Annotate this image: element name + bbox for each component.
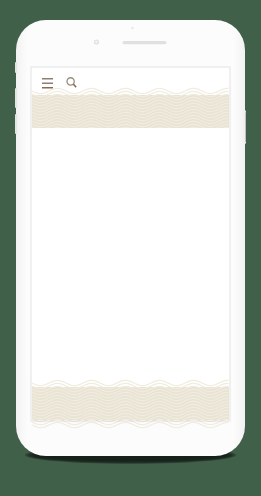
button[interactable]: Search: [62, 73, 80, 91]
button[interactable]: Menu: [38, 73, 56, 91]
